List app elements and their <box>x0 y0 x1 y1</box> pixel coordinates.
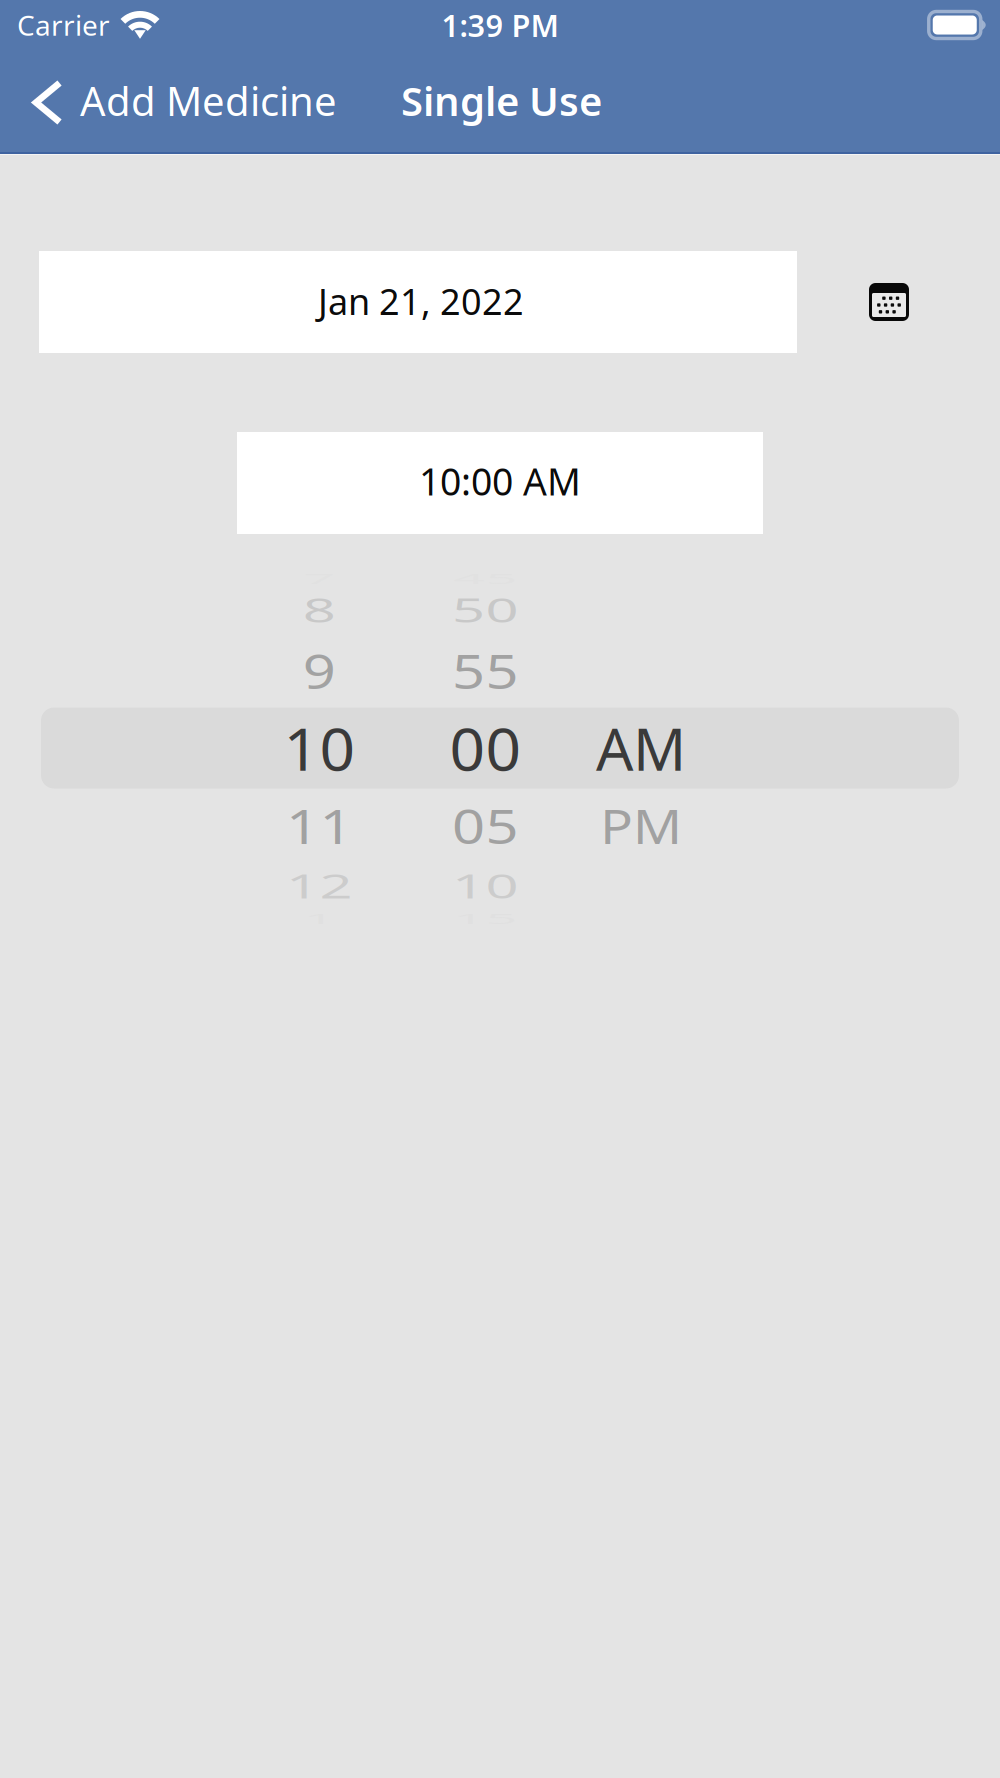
button[interactable]: Jan 21, 2022 <box>39 251 797 353</box>
staticText: Jan 21, 2022 <box>318 277 524 325</box>
staticText: Single Use <box>401 74 602 127</box>
button[interactable]: Single Use <box>401 50 602 155</box>
button[interactable]: 10:00 AM <box>237 432 763 534</box>
staticText: 15 <box>451 879 519 957</box>
button[interactable]: Hour <box>239 577 399 919</box>
button[interactable]: Add Medicine <box>0 50 353 155</box>
staticText: 50 <box>451 571 519 649</box>
staticText: 1:39 PM <box>441 5 558 45</box>
button[interactable]: Open calendar <box>867 280 911 324</box>
staticText: 12 <box>285 847 353 925</box>
staticText: 55 <box>451 631 519 709</box>
staticText: Add Medicine <box>80 74 337 127</box>
staticText: 05 <box>451 786 519 864</box>
staticText: 8 <box>302 571 336 649</box>
staticText: 10:00 AM <box>419 456 581 506</box>
staticText: 10 <box>451 847 519 925</box>
staticText: AM <box>596 709 686 787</box>
staticText: PM <box>597 786 685 864</box>
staticText: 9 <box>302 631 336 709</box>
staticText: 00 <box>451 709 519 787</box>
button[interactable]: Minute <box>405 577 565 919</box>
staticText: 1 <box>302 879 336 957</box>
staticText: Carrier <box>17 6 110 44</box>
staticText: 45 <box>451 539 519 617</box>
staticText: 11 <box>285 786 353 864</box>
button[interactable]: AM or PM <box>565 577 710 919</box>
staticText: 7 <box>302 539 336 617</box>
staticText: 10 <box>285 709 353 787</box>
